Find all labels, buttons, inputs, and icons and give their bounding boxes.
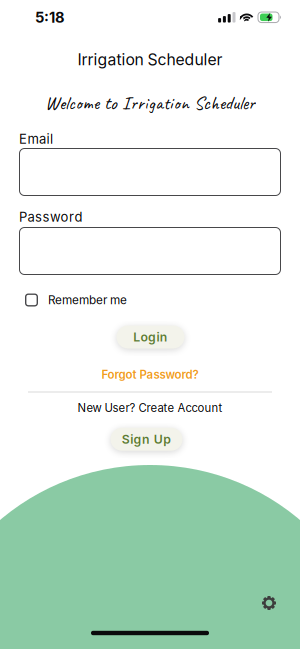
- staticText: Password: [19, 209, 82, 225]
- button[interactable]: [19, 227, 281, 275]
- staticText: Welcome to Irrigation Scheduler: [45, 91, 255, 115]
- button[interactable]: Remember me: [25, 293, 127, 307]
- staticText: Email: [19, 131, 53, 147]
- staticText: Sign Up: [122, 432, 171, 447]
- staticText: 5:18: [35, 8, 65, 26]
- button[interactable]: [262, 596, 276, 610]
- staticText: Irrigation Scheduler: [77, 50, 222, 69]
- button[interactable]: Login: [116, 325, 184, 348]
- button[interactable]: Sign Up: [110, 428, 182, 451]
- staticText: Remember me: [48, 293, 127, 307]
- staticText: Login: [133, 330, 168, 344]
- button[interactable]: [19, 148, 281, 196]
- button[interactable]: Forgot Password?: [101, 368, 198, 381]
- staticText: New User? Create Account: [77, 401, 222, 415]
- staticText: Forgot Password?: [101, 368, 198, 381]
